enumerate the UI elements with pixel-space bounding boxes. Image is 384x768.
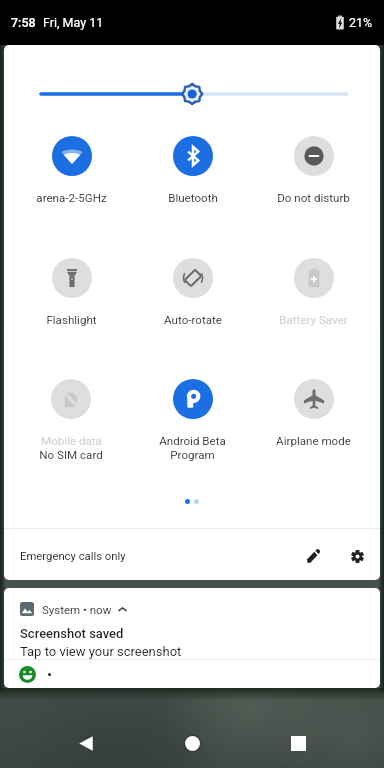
staticText: Fri, May 11 (43, 15, 104, 30)
button[interactable]: Edit tiles (295, 538, 331, 574)
staticText: Program (170, 448, 215, 462)
staticText: System • now (42, 603, 112, 616)
staticText: arena-2-5GHz (36, 191, 107, 205)
staticText: No SIM card (39, 448, 103, 462)
button[interactable]: Back (62, 719, 110, 767)
staticText: Flashlight (46, 313, 97, 327)
button[interactable]: arena-2-5GHz (10, 136, 132, 226)
button[interactable]: Airplane mode (253, 379, 374, 469)
button[interactable]: Home (168, 719, 216, 767)
button[interactable]: Brightness (37, 84, 351, 104)
staticText: 7:58 (11, 15, 36, 30)
button[interactable]: Do not disturb (253, 136, 374, 226)
button[interactable] (4, 660, 380, 688)
button[interactable]: System • now (4, 588, 380, 659)
staticText: Do not disturb (277, 191, 350, 205)
button[interactable]: Recents (274, 719, 322, 767)
button[interactable]: Android Beta (132, 379, 253, 469)
staticText: 21% (349, 15, 373, 30)
staticText: Emergency calls only (20, 550, 126, 563)
staticText: Android Beta (159, 434, 226, 448)
button[interactable]: Settings (339, 538, 375, 574)
staticText: Auto-rotate (164, 313, 222, 327)
staticText: Battery Saver (279, 313, 348, 327)
staticText: Airplane mode (276, 434, 351, 448)
staticText: Tap to view your screenshot (20, 644, 182, 659)
staticText: Screenshot saved (20, 626, 124, 641)
button[interactable]: Auto-rotate (132, 258, 253, 348)
button[interactable]: Battery Saver (253, 258, 374, 348)
staticText: Mobile data (41, 434, 102, 448)
button[interactable]: Flashlight (10, 258, 132, 348)
button[interactable]: Mobile data (10, 379, 132, 469)
staticText: Bluetooth (168, 191, 218, 205)
button[interactable]: Bluetooth (132, 136, 253, 226)
